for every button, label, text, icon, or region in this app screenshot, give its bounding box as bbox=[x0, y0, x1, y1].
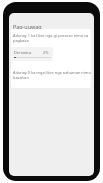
staticText: 2% bbox=[43, 50, 49, 55]
staticText: Adunay 0 ka mga libre nga nahuman nimo b… bbox=[13, 70, 91, 80]
staticText: Derivatus bbox=[14, 50, 32, 55]
staticText: Adunay 1 ka libre nga gi-proseso nimo sa… bbox=[13, 33, 91, 43]
button[interactable]: Derivatus bbox=[11, 47, 53, 61]
staticText: Pag-uuwag bbox=[13, 23, 42, 30]
